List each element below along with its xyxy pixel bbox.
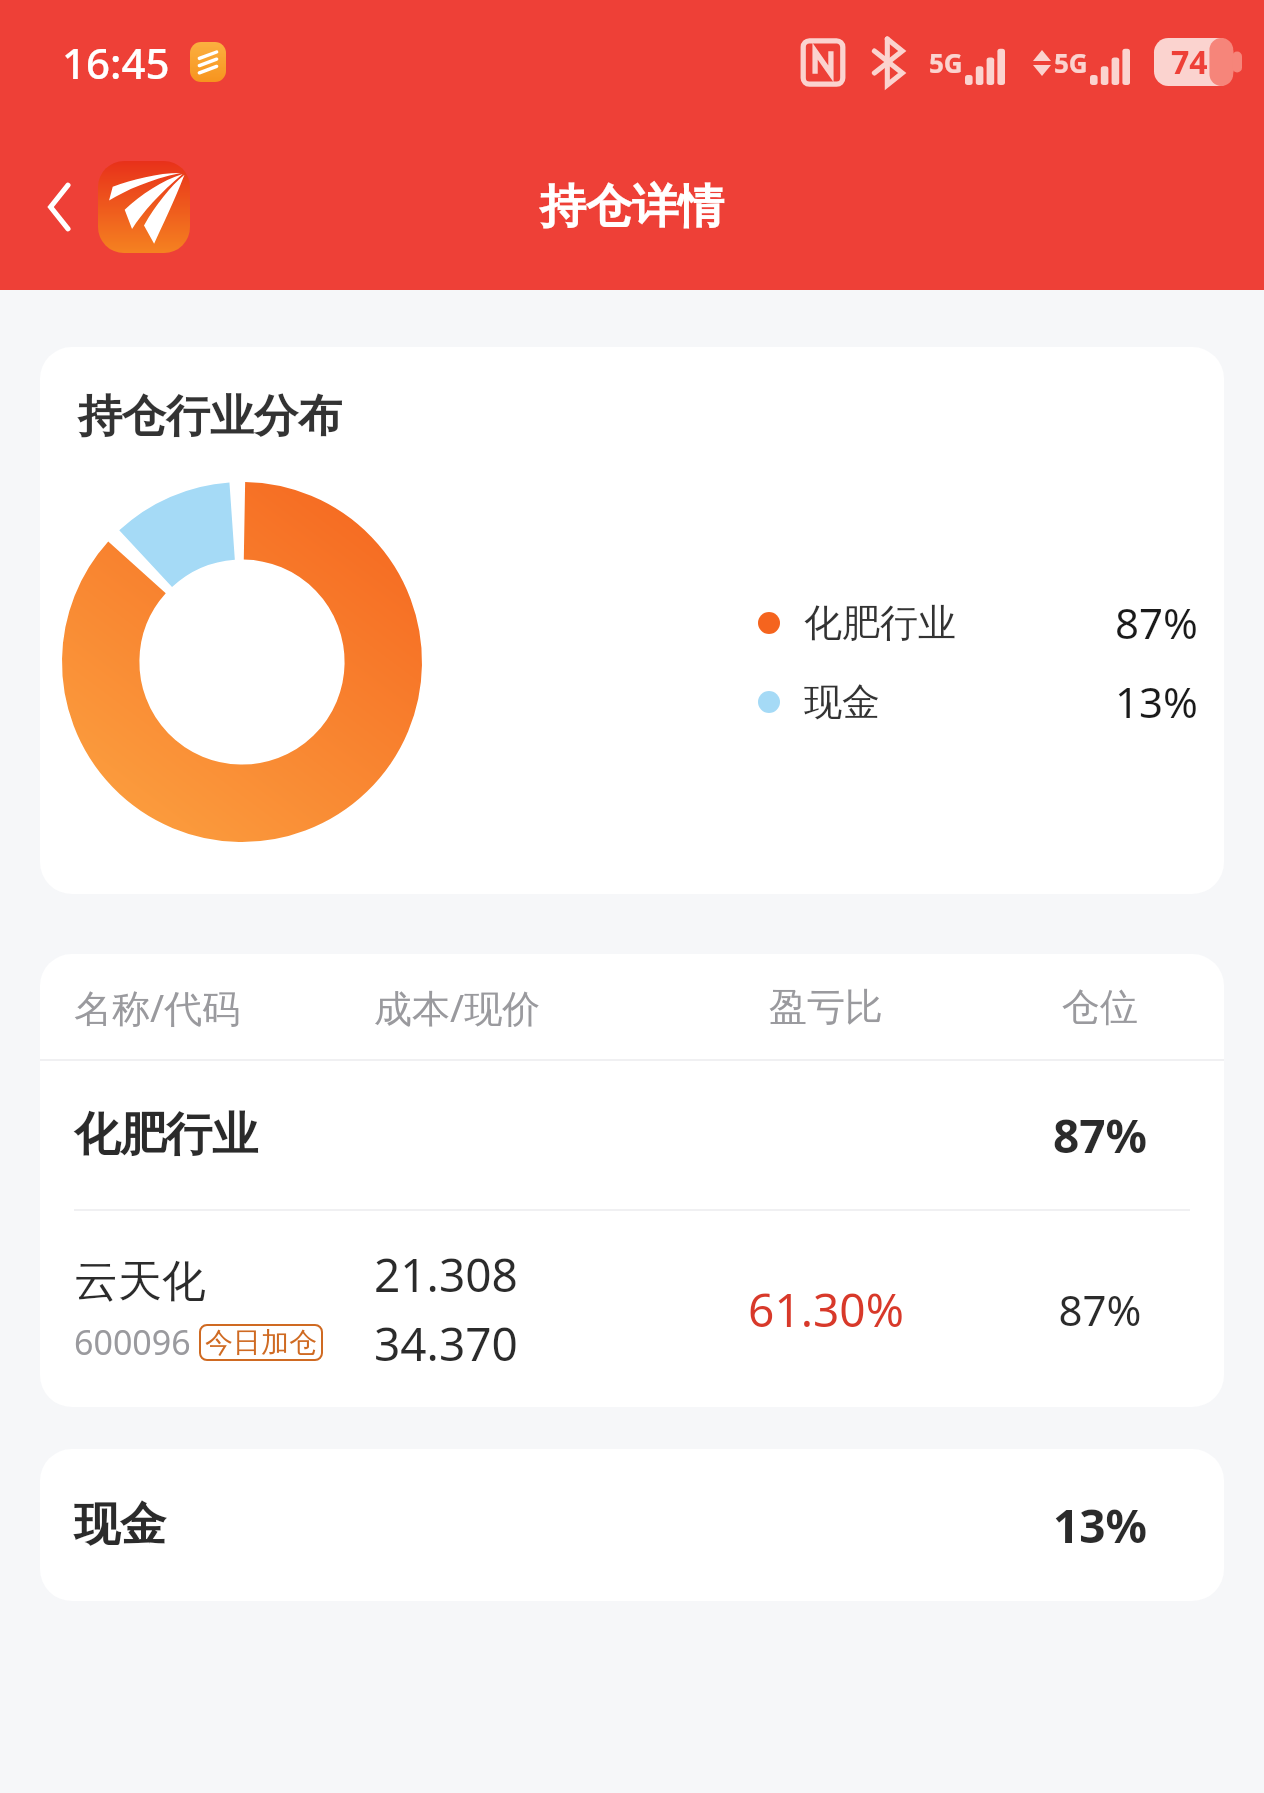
staticText: 云天化	[74, 1254, 206, 1309]
button[interactable]: Back	[26, 174, 92, 240]
staticText: 5G	[929, 45, 963, 80]
staticText: 34.370	[374, 1312, 518, 1375]
staticText: 13%	[1010, 1494, 1190, 1557]
staticText: 5G	[1054, 45, 1088, 80]
staticText: 16:45	[62, 34, 170, 91]
staticText: 盈亏比	[642, 983, 1010, 1031]
button[interactable]: 云天化	[40, 1211, 1224, 1407]
button[interactable]: 化肥行业	[40, 1061, 1224, 1209]
staticText: 61.30%	[642, 1278, 1010, 1341]
staticText: 600096	[74, 1319, 191, 1365]
button[interactable]: App home	[98, 161, 190, 253]
staticText: 74	[1171, 40, 1208, 84]
staticText: 87%	[1010, 1104, 1190, 1167]
staticText: 87%	[1010, 1281, 1190, 1338]
button[interactable]: 现金	[40, 1449, 1224, 1601]
staticText: 化肥行业	[804, 599, 956, 647]
staticText: 仓位	[1010, 983, 1190, 1031]
staticText: 现金	[804, 678, 880, 726]
staticText: 名称/代码	[74, 981, 374, 1033]
staticText: 今日加仓	[205, 1325, 317, 1360]
staticText: 13%	[1115, 673, 1198, 730]
staticText: 化肥行业	[74, 1106, 258, 1164]
staticText: 持仓行业分布	[78, 389, 342, 444]
staticText: 持仓详情	[540, 178, 724, 236]
staticText: 21.308	[374, 1243, 518, 1306]
staticText: 87%	[1115, 594, 1198, 651]
staticText: 成本/现价	[374, 981, 642, 1033]
staticText: 现金	[74, 1496, 166, 1554]
